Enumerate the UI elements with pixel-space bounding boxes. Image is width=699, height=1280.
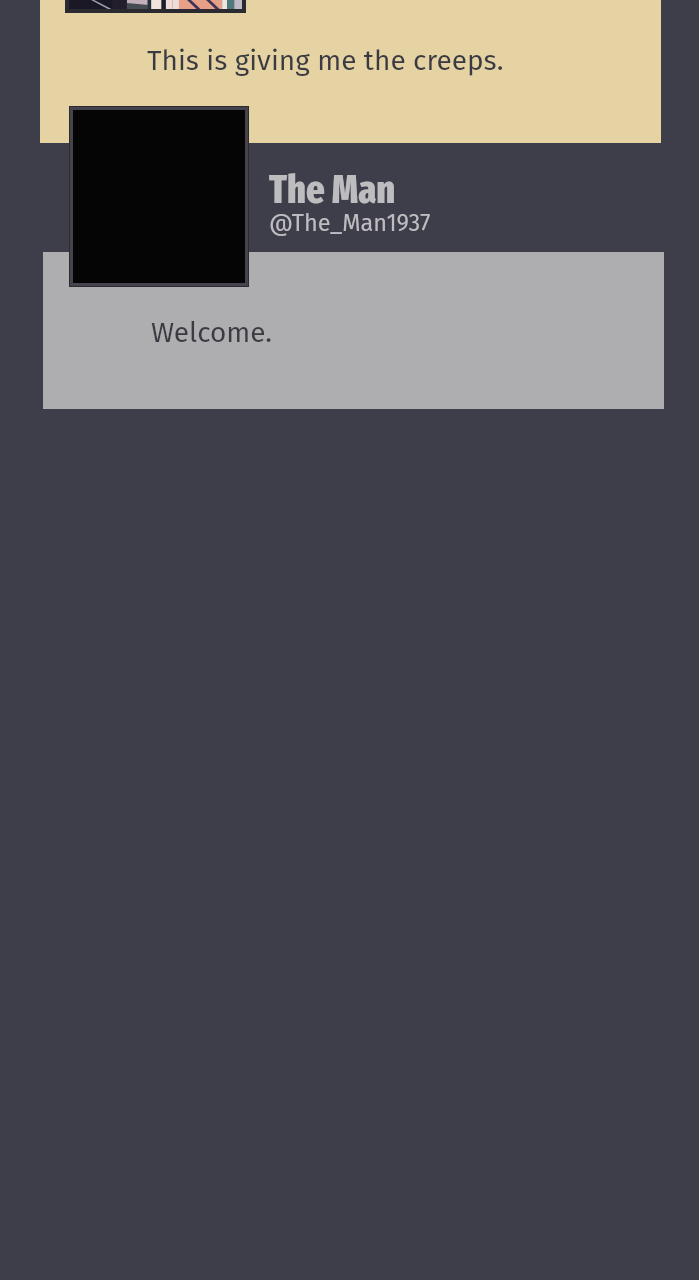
button[interactable]: Welcome. — [43, 252, 664, 409]
staticText: @The_Man1937 — [269, 209, 431, 237]
staticText: This is giving me the creeps. — [147, 44, 504, 78]
button[interactable]: Attached photo — [65, 0, 246, 13]
button[interactable]: This is giving me the creeps. — [40, 0, 661, 143]
staticText: The Man — [269, 166, 396, 213]
staticText: Welcome. — [151, 316, 273, 350]
